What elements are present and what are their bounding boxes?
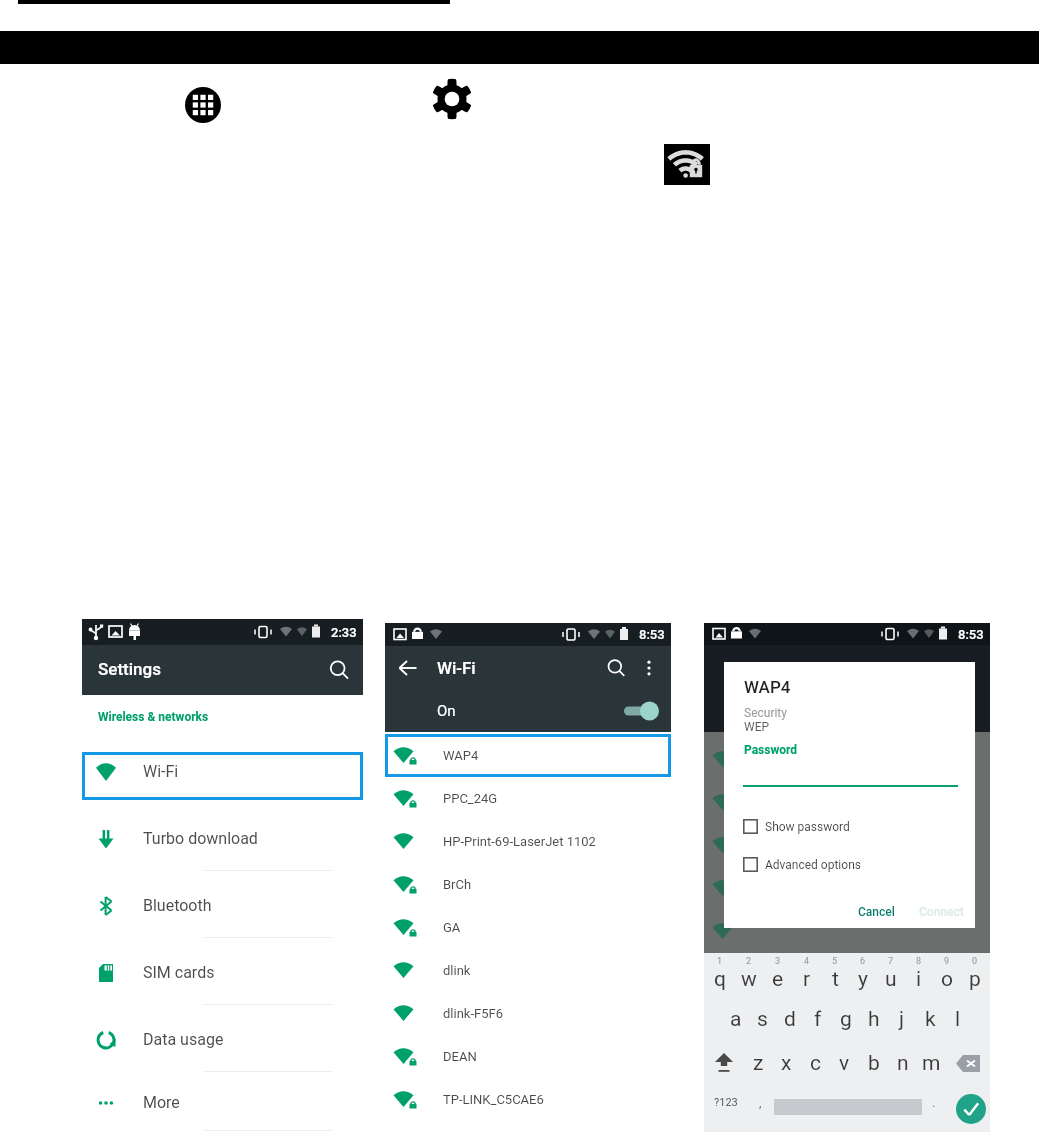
staticText: BrCh xyxy=(443,877,472,892)
button[interactable]: Search xyxy=(328,659,351,682)
staticText: k xyxy=(925,1007,936,1032)
staticText: More xyxy=(143,1093,180,1112)
button[interactable]: BrCh xyxy=(385,863,671,906)
staticText: Turbo download xyxy=(143,829,258,848)
button[interactable]: Connect xyxy=(912,900,971,924)
button[interactable]: Bluetooth xyxy=(82,872,363,939)
button[interactable]: c xyxy=(801,1041,830,1085)
staticText: x xyxy=(781,1051,792,1076)
staticText: 8 xyxy=(916,956,922,967)
button[interactable]: DEAN xyxy=(385,1035,671,1078)
button[interactable]: n xyxy=(888,1041,917,1085)
button[interactable]: k xyxy=(916,997,944,1041)
staticText: h xyxy=(868,1007,880,1032)
button[interactable]: d xyxy=(776,997,804,1041)
staticText: PPC_24G xyxy=(443,791,498,806)
staticText: dlink xyxy=(443,963,471,978)
button[interactable]: 7 xyxy=(877,953,905,997)
staticText: d xyxy=(784,1007,796,1032)
staticText: 5 xyxy=(832,956,838,967)
staticText: 0 xyxy=(972,956,978,967)
button[interactable]: Search xyxy=(606,658,627,679)
button[interactable]: dlink xyxy=(385,949,671,992)
button[interactable]: Cancel xyxy=(851,900,902,924)
button[interactable]: f xyxy=(804,997,832,1041)
staticText: Wi-Fi xyxy=(437,658,476,678)
staticText: GA xyxy=(443,920,461,935)
button[interactable]: HP-Print-69-LaserJet 1102 xyxy=(385,820,671,863)
staticText: 2 xyxy=(746,956,752,967)
button[interactable]: g xyxy=(832,997,860,1041)
button[interactable]: Wi-Fi xyxy=(82,738,363,805)
staticText: TP-LINK_C5CAE6 xyxy=(443,1092,544,1107)
staticText: 8:53 xyxy=(639,627,665,642)
button[interactable]: Data usage xyxy=(82,1006,363,1073)
button[interactable]: More options xyxy=(640,659,658,677)
staticText: Cancel xyxy=(858,905,895,919)
button[interactable]: x xyxy=(772,1041,801,1085)
button[interactable]: Back xyxy=(397,657,419,679)
staticText: Show password xyxy=(765,820,850,834)
button[interactable]: 8 xyxy=(905,953,933,997)
staticText: n xyxy=(897,1051,909,1076)
button[interactable]: GA xyxy=(385,906,671,949)
staticText: Password xyxy=(744,743,798,757)
staticText: w xyxy=(741,967,757,992)
staticText: dlink-F5F6 xyxy=(443,1006,503,1021)
button[interactable]: More xyxy=(82,1073,363,1132)
staticText: , xyxy=(759,1095,762,1110)
button[interactable]: Show password xyxy=(743,819,850,834)
staticText: 9 xyxy=(944,956,950,967)
button[interactable]: WAP4 xyxy=(385,734,671,777)
button[interactable]: a xyxy=(722,997,749,1041)
button[interactable]: 1 xyxy=(705,953,734,997)
staticText: Data usage xyxy=(143,1030,224,1049)
button[interactable]: 3 xyxy=(763,953,792,997)
button[interactable]: h xyxy=(860,997,888,1041)
staticText: DEAN xyxy=(443,1049,477,1064)
button[interactable]: Turbo download xyxy=(82,805,363,872)
button[interactable]: Shift xyxy=(704,1041,744,1085)
button[interactable]: 5 xyxy=(821,953,849,997)
button[interactable]: Settings xyxy=(431,78,473,120)
button[interactable]: v xyxy=(830,1041,859,1085)
button[interactable]: 6 xyxy=(849,953,877,997)
button[interactable]: z xyxy=(744,1041,772,1085)
button[interactable]: 4 xyxy=(792,953,821,997)
button[interactable]: On xyxy=(385,690,671,732)
staticText: 1 xyxy=(717,956,723,967)
button[interactable]: TP-LINK_C5CAE6 xyxy=(385,1078,671,1121)
button[interactable]: dlink-F5F6 xyxy=(385,992,671,1035)
staticText: i xyxy=(916,967,922,992)
button[interactable]: l xyxy=(944,997,972,1041)
staticText: g xyxy=(840,1007,852,1032)
button[interactable]: Backspace xyxy=(946,1041,990,1085)
button[interactable]: b xyxy=(859,1041,888,1085)
button[interactable]: Enter xyxy=(956,1094,986,1124)
button[interactable]: SIM cards xyxy=(82,939,363,1006)
button[interactable]: 0 xyxy=(961,953,989,997)
button[interactable]: s xyxy=(749,997,776,1041)
staticText: HP-Print-69-LaserJet 1102 xyxy=(443,834,596,849)
staticText: b xyxy=(868,1051,880,1076)
staticText: 6 xyxy=(860,956,866,967)
staticText: o xyxy=(941,967,953,992)
staticText: Connect xyxy=(919,905,964,919)
button[interactable]: 9 xyxy=(933,953,961,997)
staticText: WAP4 xyxy=(443,748,479,763)
button[interactable]: 2 xyxy=(734,953,763,997)
staticText: 3 xyxy=(775,956,781,967)
button[interactable]: Advanced options xyxy=(743,857,861,872)
staticText: u xyxy=(885,967,897,992)
button[interactable]: Secured Wi-Fi network xyxy=(664,144,710,185)
staticText: On xyxy=(437,702,456,720)
button[interactable]: j xyxy=(888,997,916,1041)
staticText: l xyxy=(955,1007,961,1032)
button[interactable]: m xyxy=(917,1041,946,1085)
button[interactable]: All apps xyxy=(185,87,221,123)
staticText: r xyxy=(803,967,811,992)
staticText: Wireless & networks xyxy=(98,710,209,724)
staticText: f xyxy=(814,1007,822,1032)
button[interactable]: PPC_24G xyxy=(385,777,671,820)
